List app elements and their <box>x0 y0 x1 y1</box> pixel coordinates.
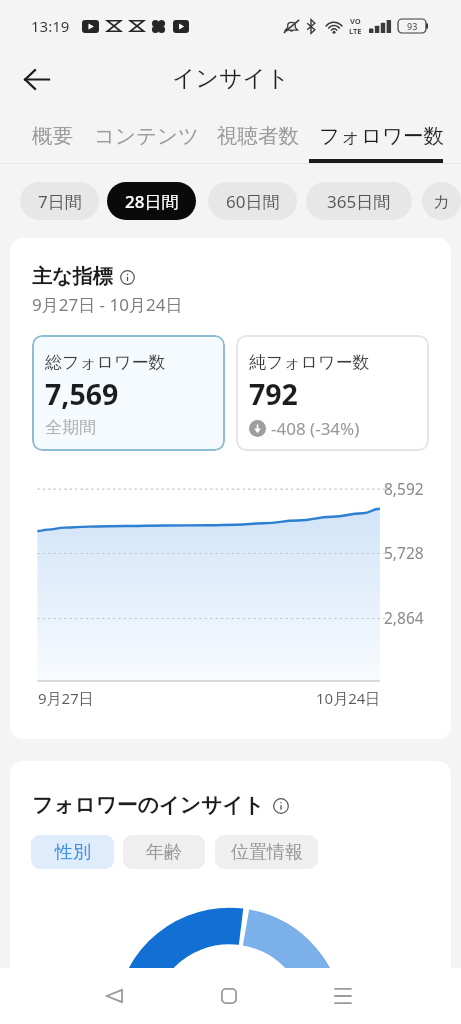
staticText: 位置情報 <box>231 841 303 864</box>
staticText: 9月27日 - 10月24日 <box>32 293 183 316</box>
button[interactable]: 性別 <box>31 835 114 869</box>
button[interactable]: 視聴者数 <box>207 105 308 163</box>
staticText: コンテンツ <box>94 123 199 149</box>
button[interactable]: 年齢 <box>123 835 205 869</box>
button[interactable]: 7日間 <box>20 182 99 220</box>
staticText: フォロワー数 <box>319 123 444 149</box>
button[interactable]: 60日間 <box>208 182 297 220</box>
staticText: 5,728 <box>384 542 424 563</box>
button[interactable]: コンテンツ <box>86 105 207 163</box>
staticText: 28日間 <box>125 190 179 213</box>
button[interactable]: 365日間 <box>306 182 412 220</box>
staticText: 10月24日 <box>316 688 381 708</box>
staticText: 主な指標 <box>32 264 113 289</box>
staticText: VO <box>350 16 361 26</box>
staticText: フォロワーのインサイト <box>32 792 265 818</box>
staticText: 365日間 <box>327 190 391 213</box>
staticText: 年齢 <box>146 841 182 864</box>
staticText: 全期間 <box>45 417 96 438</box>
staticText: カ <box>433 191 451 212</box>
staticText: 総フォロワー数 <box>45 352 166 373</box>
staticText: LTE <box>349 26 362 36</box>
staticText: 93 <box>407 20 418 32</box>
button[interactable]: Recent apps <box>315 968 371 1024</box>
staticText: 視聴者数 <box>217 123 299 149</box>
staticText: 792 <box>249 375 298 414</box>
staticText: 2,864 <box>384 607 424 628</box>
staticText: 9月27日 <box>38 688 94 708</box>
button[interactable]: Back <box>13 56 59 102</box>
button[interactable]: フォロワー数 <box>309 105 443 163</box>
staticText: -408 (-34%) <box>271 417 360 440</box>
staticText: 性別 <box>55 841 91 864</box>
button[interactable]: Back <box>86 968 142 1024</box>
button[interactable]: 純フォロワー数 <box>236 335 429 451</box>
staticText: インサイト <box>172 64 290 93</box>
staticText: 13:19 <box>31 16 70 36</box>
button[interactable]: 位置情報 <box>215 835 318 869</box>
staticText: 8,592 <box>384 478 424 499</box>
button[interactable]: 概要 <box>19 105 86 163</box>
staticText: 60日間 <box>226 190 280 213</box>
button[interactable]: カ <box>422 182 461 220</box>
staticText: 7日間 <box>38 190 82 213</box>
staticText: 純フォロワー数 <box>249 352 370 373</box>
staticText: 7,569 <box>45 375 119 414</box>
button[interactable]: Home <box>201 968 257 1024</box>
button[interactable]: 総フォロワー数 <box>32 335 225 451</box>
staticText: 概要 <box>32 123 73 149</box>
button[interactable]: 28日間 <box>107 182 196 220</box>
